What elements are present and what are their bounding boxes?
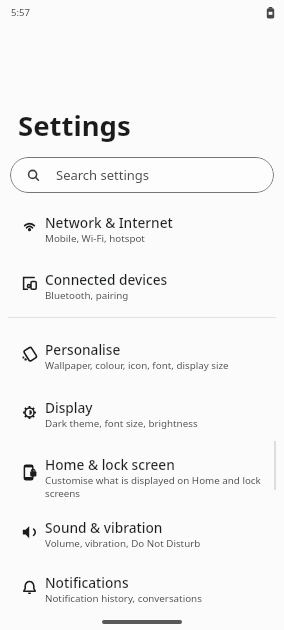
button[interactable]: Network & Internet	[0, 207, 284, 248]
button[interactable]: Home & lock screen	[0, 449, 284, 503]
staticText: Personalise	[45, 340, 121, 359]
staticText: Display	[45, 398, 93, 417]
staticText: Network & Internet	[45, 213, 173, 232]
button[interactable]: Display	[0, 392, 284, 432]
staticText: screens	[45, 487, 81, 500]
staticText: Bluetooth, pairing	[45, 289, 129, 302]
button[interactable]: Search settings	[10, 157, 274, 193]
staticText: Settings	[18, 107, 131, 144]
staticText: Wallpaper, colour, icon, font, display s…	[45, 359, 229, 372]
staticText: Sound & vibration	[45, 518, 163, 537]
staticText: Notification history, conversations	[45, 592, 202, 605]
button[interactable]: Sound & vibration	[0, 512, 284, 554]
staticText: Dark theme, font size, brightness	[45, 417, 198, 430]
staticText: Volume, vibration, Do Not Disturb	[45, 537, 201, 550]
button[interactable]: Notifications	[0, 567, 284, 609]
staticText: Notifications	[45, 573, 129, 592]
button[interactable]: Connected devices	[0, 264, 284, 304]
staticText: Home & lock screen	[45, 455, 175, 474]
staticText: Connected devices	[45, 270, 168, 289]
staticText: 5:57	[11, 6, 30, 19]
staticText: Search settings	[56, 166, 150, 184]
button[interactable]: Personalise	[0, 334, 284, 375]
staticText: Mobile, Wi-Fi, hotspot	[45, 232, 145, 245]
staticText: Customise what is displayed on Home and …	[45, 474, 261, 487]
